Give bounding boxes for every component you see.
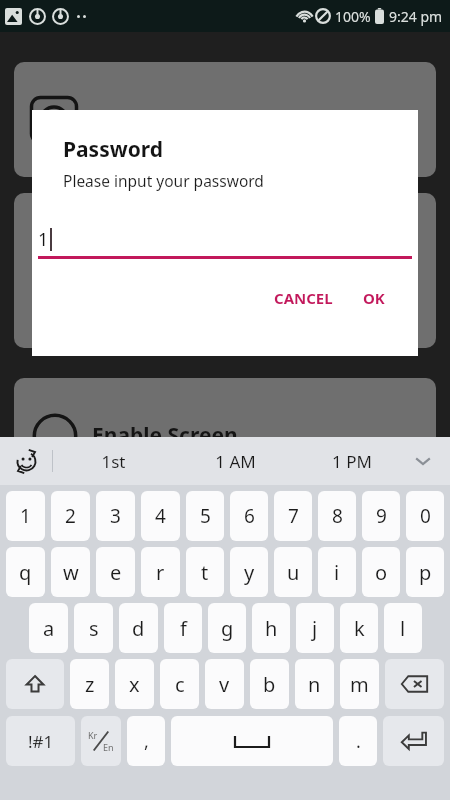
button[interactable]: l — [384, 603, 422, 653]
staticText: 0 — [420, 503, 431, 529]
button[interactable]: 1 AM — [174, 437, 296, 485]
button[interactable]: d — [119, 603, 158, 653]
staticText: j — [312, 615, 318, 642]
button[interactable]: Space — [171, 716, 333, 766]
staticText: Please input your password — [63, 170, 264, 191]
button[interactable]: m — [340, 659, 379, 709]
staticText: p — [419, 559, 432, 586]
button[interactable]: CANCEL — [265, 279, 342, 317]
staticText: r — [156, 559, 165, 586]
button[interactable]: g — [208, 603, 246, 653]
button[interactable]: Shift — [6, 659, 64, 709]
staticText: 1 — [38, 227, 49, 252]
button[interactable]: h — [252, 603, 290, 653]
button[interactable]: 8 — [318, 491, 356, 541]
button[interactable]: 1 — [6, 491, 45, 541]
staticText: g — [221, 615, 234, 642]
button[interactable]: Expand suggestions — [408, 446, 438, 476]
staticText: 1 AM — [215, 450, 256, 473]
button[interactable]: Change language — [81, 716, 121, 766]
staticText: , — [144, 729, 149, 754]
staticText: c — [175, 671, 185, 698]
staticText: t — [201, 559, 209, 586]
button[interactable]: f — [164, 603, 202, 653]
staticText: CANCEL — [274, 288, 333, 308]
staticText: k — [354, 615, 365, 642]
staticText: 1 PM — [332, 450, 372, 473]
button[interactable]: o — [362, 547, 400, 597]
button[interactable]: 1 PM — [296, 437, 408, 485]
staticText: e — [110, 559, 122, 586]
button[interactable]: Train Eyes — [14, 62, 436, 177]
staticText: En — [103, 741, 114, 753]
button[interactable]: i — [318, 547, 356, 597]
button[interactable]: e — [96, 547, 135, 597]
staticText: q — [19, 559, 32, 586]
button[interactable]: t — [186, 547, 224, 597]
staticText: . — [356, 729, 361, 754]
staticText: s — [89, 615, 99, 642]
staticText: 4 — [155, 503, 166, 529]
button[interactable]: 0 — [406, 491, 444, 541]
button[interactable]: Enable Screen — [14, 378, 436, 493]
staticText: OK — [363, 288, 385, 308]
button[interactable]: Emoji and stickers — [10, 445, 42, 477]
button[interactable]: Backspace — [385, 659, 444, 709]
staticText: 9:24 pm — [389, 7, 443, 26]
staticText: b — [263, 671, 276, 698]
button[interactable]: 4 — [141, 491, 180, 541]
button[interactable]: y — [230, 547, 268, 597]
button[interactable]: v — [205, 659, 244, 709]
button[interactable]: a — [29, 603, 68, 653]
button[interactable]: j — [296, 603, 334, 653]
staticText: 100% — [335, 7, 371, 26]
staticText: l — [400, 615, 406, 642]
staticText: !#1 — [28, 730, 54, 753]
staticText: w — [63, 559, 79, 586]
staticText: 1 — [20, 503, 31, 529]
button[interactable]: s — [74, 603, 113, 653]
staticText: f — [180, 615, 187, 642]
staticText: 5 — [200, 503, 211, 529]
button[interactable]: Symbols — [6, 716, 75, 766]
button[interactable]: u — [274, 547, 312, 597]
staticText: a — [43, 615, 55, 642]
button[interactable]: n — [295, 659, 334, 709]
button[interactable]: k — [340, 603, 378, 653]
button[interactable]: 7 — [274, 491, 312, 541]
staticText: 8 — [332, 503, 343, 529]
button[interactable]: z — [70, 659, 109, 709]
button[interactable]: 3 — [96, 491, 135, 541]
staticText: 6 — [244, 503, 255, 529]
button[interactable]: Enter — [383, 716, 444, 766]
staticText: Train Eyes — [92, 105, 197, 134]
staticText: x — [129, 671, 140, 698]
button[interactable]: 9 — [362, 491, 400, 541]
staticText: i — [334, 559, 340, 586]
button[interactable]: q — [6, 547, 45, 597]
staticText: 2 — [65, 503, 76, 529]
button[interactable] — [14, 193, 436, 348]
button[interactable]: p — [406, 547, 444, 597]
button[interactable]: c — [160, 659, 199, 709]
button[interactable]: r — [141, 547, 180, 597]
staticText: 1st — [101, 450, 126, 473]
button[interactable]: x — [115, 659, 154, 709]
staticText: Kr — [88, 729, 98, 741]
staticText: 3 — [110, 503, 121, 529]
staticText: h — [265, 615, 278, 642]
button[interactable]: w — [51, 547, 90, 597]
staticText: y — [244, 559, 255, 586]
button[interactable]: 5 — [186, 491, 224, 541]
button[interactable]: b — [250, 659, 289, 709]
staticText: d — [132, 615, 145, 642]
staticText: v — [219, 671, 230, 698]
staticText: Enable Screen — [92, 421, 238, 450]
button[interactable]: , — [127, 716, 165, 766]
button[interactable]: 6 — [230, 491, 268, 541]
staticText: u — [287, 559, 300, 586]
button[interactable]: 2 — [51, 491, 90, 541]
button[interactable]: OK — [354, 279, 394, 317]
button[interactable]: . — [339, 716, 377, 766]
button[interactable]: 1st — [53, 437, 174, 485]
